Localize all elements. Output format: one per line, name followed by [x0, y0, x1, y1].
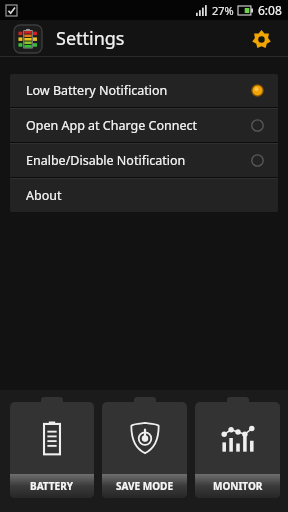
button[interactable]: SAVE MODE — [102, 402, 187, 498]
staticText: 27% — [212, 3, 234, 18]
staticText: MONITOR — [213, 479, 263, 493]
staticText: BATTERY — [30, 479, 74, 493]
button[interactable]: Enalbe/Disable Notification — [10, 144, 278, 177]
button[interactable]: About — [10, 179, 278, 212]
button[interactable]: Open App at Charge Connect — [10, 109, 278, 142]
button[interactable]: Settings — [244, 22, 278, 56]
button[interactable]: BATTERY — [10, 402, 94, 498]
staticText: Settings — [56, 26, 125, 51]
staticText: 6:08 — [258, 2, 282, 18]
staticText: Open App at Charge Connect — [26, 117, 198, 134]
staticText: About — [26, 187, 62, 204]
staticText: Enalbe/Disable Notification — [26, 152, 186, 169]
staticText: Low Battery Notification — [26, 82, 168, 99]
staticText: SAVE MODE — [116, 479, 173, 493]
button[interactable]: Low Battery Notification — [10, 74, 278, 107]
button[interactable]: MONITOR — [195, 402, 280, 498]
